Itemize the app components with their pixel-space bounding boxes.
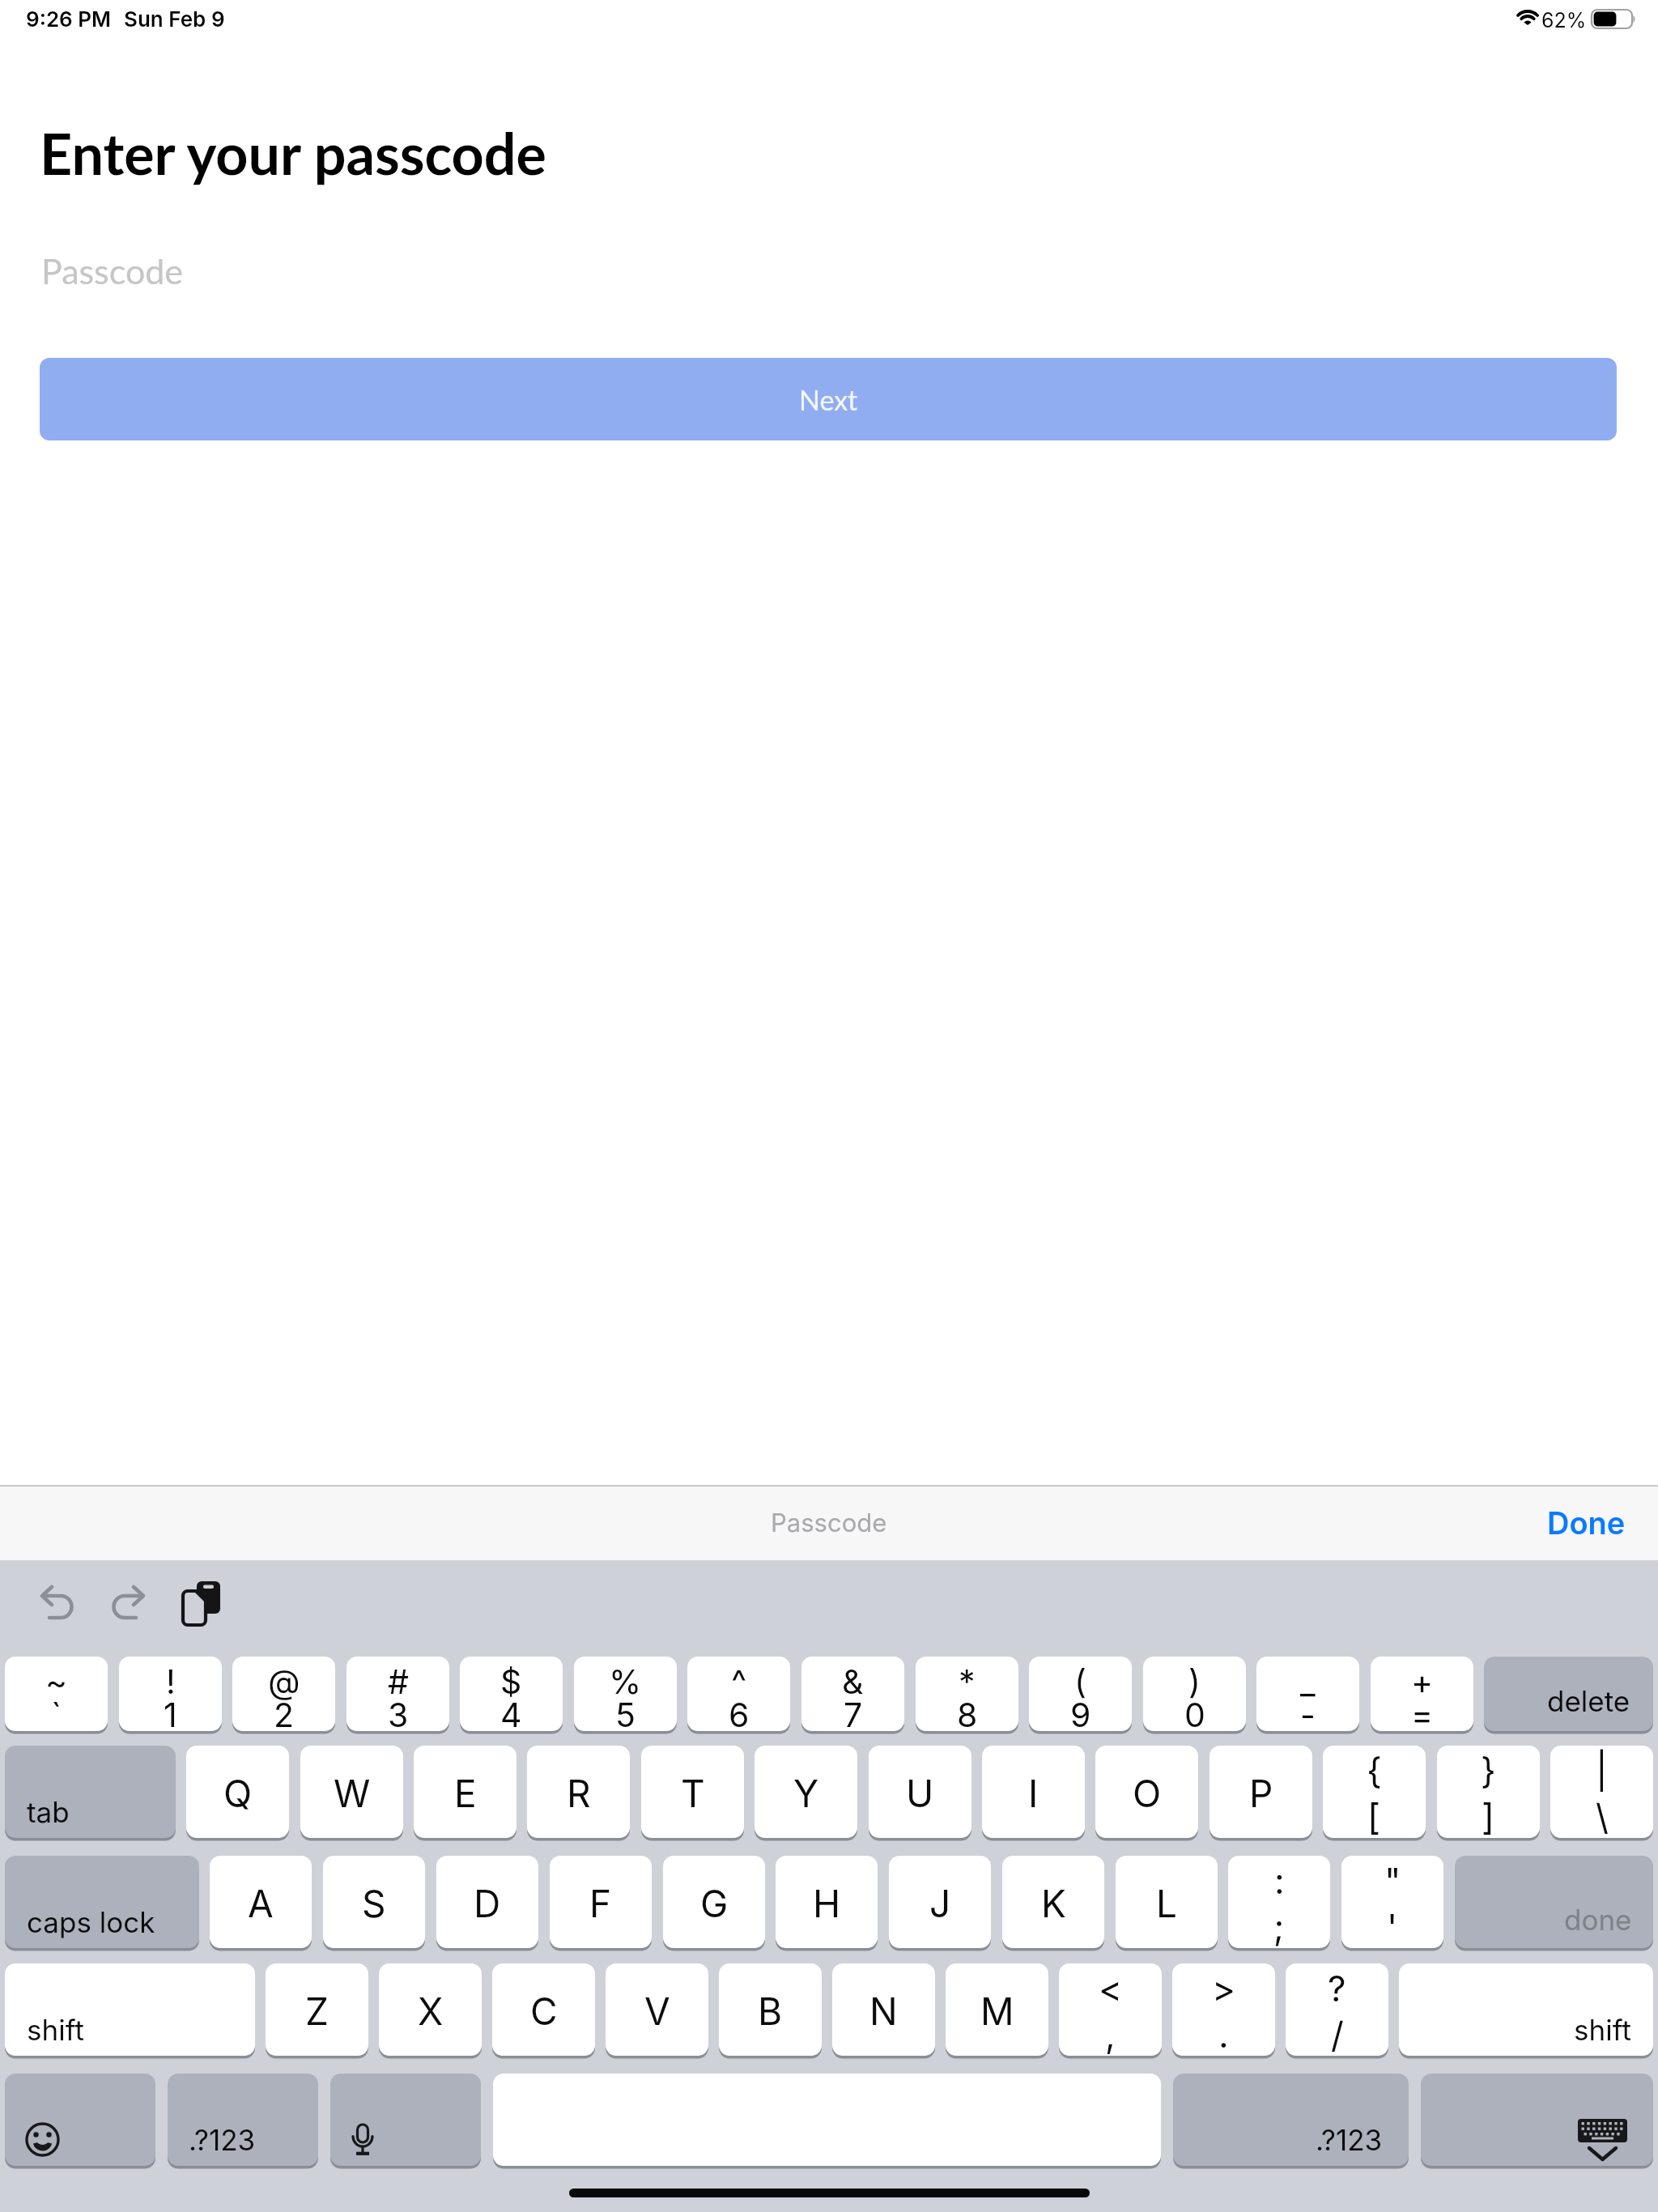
staticText: ^: [731, 1661, 747, 1702]
button[interactable]: Passcode: [32, 239, 1626, 304]
staticText: C: [530, 1989, 558, 2034]
staticText: P: [1249, 1771, 1273, 1816]
button[interactable]: <: [1059, 1963, 1162, 2056]
button[interactable]: E: [414, 1746, 517, 1838]
button[interactable]: L: [1116, 1856, 1218, 1948]
staticText: Q: [223, 1771, 253, 1816]
button[interactable]: :: [1228, 1856, 1330, 1948]
button[interactable]: [1421, 2074, 1653, 2166]
staticText: Passcode: [771, 1508, 887, 1538]
staticText: .?123: [189, 2123, 256, 2157]
staticText: 0: [1184, 1695, 1205, 1735]
button[interactable]: Z: [266, 1963, 368, 2056]
button[interactable]: ): [1143, 1657, 1246, 1731]
button[interactable]: [40, 1585, 75, 1621]
button[interactable]: G: [663, 1856, 765, 1948]
button[interactable]: %: [574, 1657, 677, 1731]
button[interactable]: Done: [1547, 1504, 1626, 1542]
button[interactable]: $: [460, 1657, 563, 1731]
button[interactable]: _: [1256, 1657, 1359, 1731]
staticText: 4: [500, 1695, 522, 1735]
staticText: X: [418, 1989, 444, 2034]
button[interactable]: S: [323, 1856, 425, 1948]
button[interactable]: !: [119, 1657, 222, 1731]
button[interactable]: Y: [755, 1746, 857, 1838]
button[interactable]: R: [527, 1746, 630, 1838]
button[interactable]: A: [210, 1856, 312, 1948]
button[interactable]: #: [346, 1657, 449, 1731]
button[interactable]: caps lock: [5, 1856, 199, 1948]
button[interactable]: P: [1209, 1746, 1312, 1838]
button[interactable]: tab: [5, 1746, 176, 1838]
button[interactable]: [183, 1581, 222, 1625]
staticText: $: [500, 1661, 522, 1702]
staticText: 9: [1070, 1695, 1091, 1735]
staticText: 2: [274, 1695, 295, 1735]
button[interactable]: T: [641, 1746, 744, 1838]
button[interactable]: X: [379, 1963, 482, 2056]
button[interactable]: U: [869, 1746, 971, 1838]
button[interactable]: ": [1341, 1856, 1443, 1948]
staticText: -: [1300, 1695, 1316, 1735]
button[interactable]: [110, 1585, 146, 1621]
button[interactable]: C: [492, 1963, 595, 2056]
staticText: `: [51, 1695, 62, 1735]
staticText: Passcode: [41, 250, 184, 292]
button[interactable]: .?123: [168, 2074, 318, 2166]
staticText: H: [813, 1881, 841, 1926]
button[interactable]: @: [232, 1657, 335, 1731]
staticText: !: [166, 1661, 176, 1702]
button[interactable]: O: [1095, 1746, 1198, 1838]
button[interactable]: ^: [687, 1657, 790, 1731]
staticText: Sun Feb 9: [124, 6, 225, 32]
staticText: W: [334, 1771, 371, 1816]
button[interactable]: .?123: [1173, 2074, 1409, 2166]
staticText: .: [1218, 2013, 1229, 2056]
button[interactable]: K: [1002, 1856, 1104, 1948]
button[interactable]: &: [801, 1657, 904, 1731]
button[interactable]: Q: [186, 1746, 289, 1838]
button[interactable]: J: [889, 1856, 991, 1948]
staticText: G: [700, 1881, 729, 1926]
staticText: Z: [305, 1989, 329, 2034]
button[interactable]: >: [1172, 1963, 1275, 2056]
button[interactable]: +: [1371, 1657, 1473, 1731]
staticText: _: [1300, 1661, 1316, 1702]
button[interactable]: [5, 2074, 155, 2166]
staticText: >: [1212, 1967, 1236, 2010]
staticText: {: [1367, 1749, 1382, 1792]
staticText: L: [1156, 1881, 1178, 1926]
button[interactable]: F: [550, 1856, 652, 1948]
button[interactable]: delete: [1484, 1657, 1653, 1731]
button[interactable]: }: [1437, 1746, 1540, 1838]
button[interactable]: [330, 2074, 481, 2166]
button[interactable]: shift: [5, 1963, 255, 2056]
button[interactable]: W: [300, 1746, 403, 1838]
button[interactable]: H: [776, 1856, 878, 1948]
button[interactable]: M: [946, 1963, 1048, 2056]
staticText: S: [362, 1881, 386, 1926]
button[interactable]: *: [916, 1657, 1018, 1731]
button[interactable]: done: [1455, 1856, 1653, 1948]
staticText: ": [1384, 1859, 1401, 1902]
button[interactable]: |: [1550, 1746, 1653, 1838]
staticText: O: [1133, 1771, 1162, 1816]
button[interactable]: (: [1029, 1657, 1132, 1731]
staticText: 6: [729, 1695, 750, 1735]
button[interactable]: ?: [1286, 1963, 1388, 2056]
staticText: N: [869, 1989, 898, 2034]
staticText: Next: [799, 383, 858, 416]
staticText: ,: [1105, 2013, 1116, 2056]
staticText: V: [644, 1989, 670, 2034]
button[interactable]: V: [606, 1963, 708, 2056]
staticText: <: [1099, 1967, 1123, 2010]
button[interactable]: Next: [40, 358, 1617, 440]
button[interactable]: B: [719, 1963, 822, 2056]
button[interactable]: N: [832, 1963, 935, 2056]
button[interactable]: I: [982, 1746, 1085, 1838]
button[interactable]: D: [436, 1856, 538, 1948]
button[interactable]: shift: [1399, 1963, 1653, 2056]
button[interactable]: {: [1323, 1746, 1426, 1838]
button[interactable]: ~: [5, 1657, 108, 1731]
button[interactable]: [493, 2074, 1161, 2166]
